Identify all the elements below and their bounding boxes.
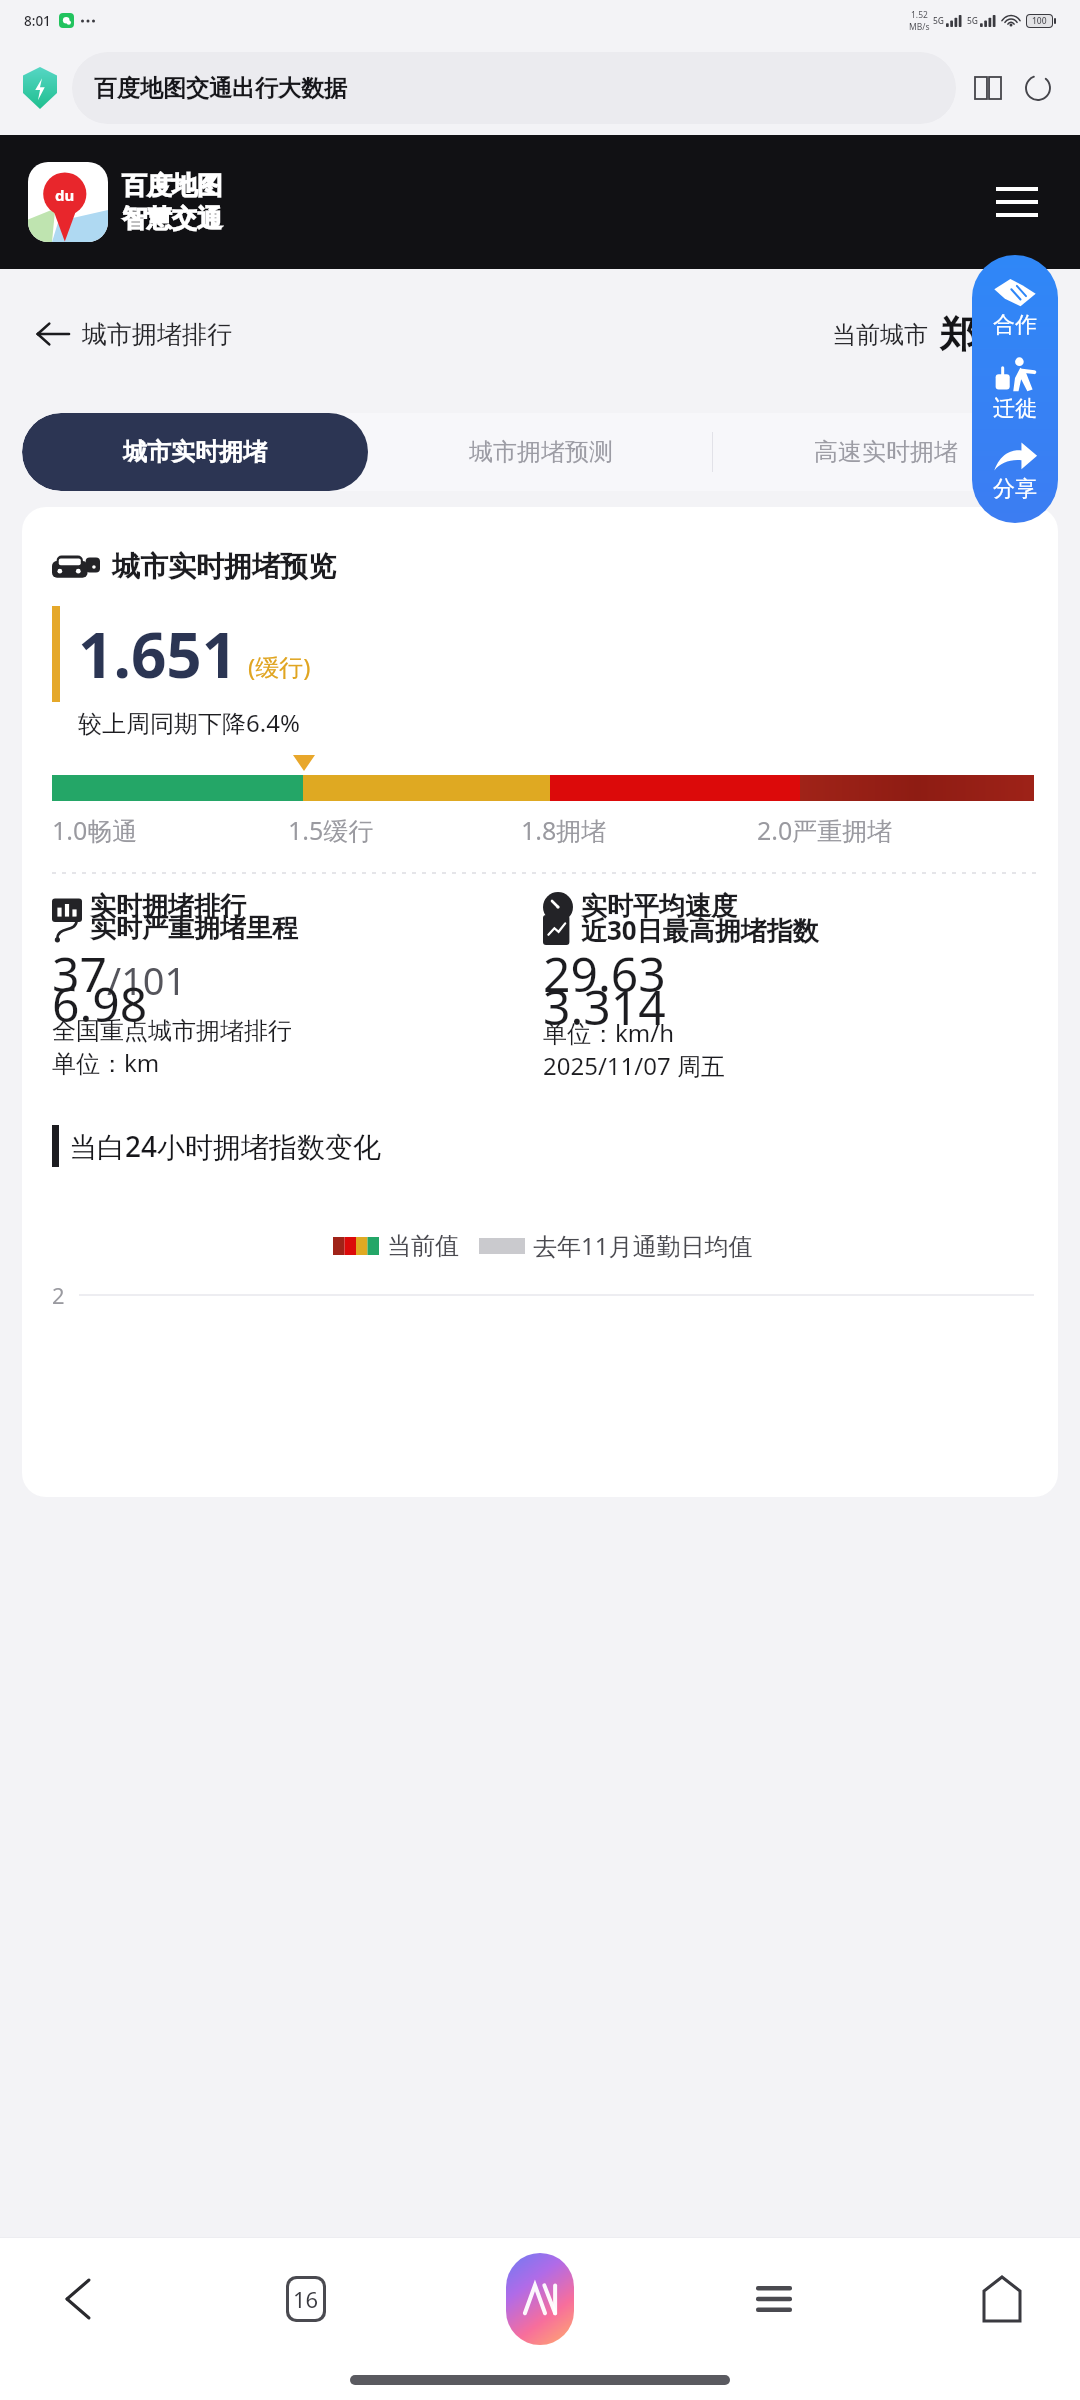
staticText: 城市实时拥堵 [123,437,267,467]
staticText: 合作 [993,311,1037,339]
button[interactable]: 城市拥堵排行 [30,304,232,364]
button[interactable]: 近30日最高拥堵指数 [543,912,1034,1082]
staticText: 当前值 [387,1231,459,1261]
staticText: 实时平均速度 [581,890,737,923]
button[interactable]: 百度地图交通出行大数据 [72,52,956,124]
staticText: 百度地图 [122,170,222,201]
staticText: 全国重点城市拥堵排行 [52,1016,292,1046]
button[interactable]: 实时拥堵排行 [52,890,543,1046]
button[interactable]: 合作 [972,271,1058,343]
button[interactable]: 城市实时拥堵 [22,413,368,491]
staticText: /101 [107,954,187,1006]
button[interactable]: Tabs [266,2259,346,2339]
staticText: 1.651 [78,612,238,696]
button[interactable]: Home [962,2259,1042,2339]
staticText: 1.5缓行 [288,813,521,847]
staticText: 城市拥堵预测 [469,437,613,467]
staticText: 8:01 [24,12,51,30]
staticText: 5G [933,15,945,27]
staticText: 单位：km [52,1046,160,1079]
staticText: 智慧交通 [122,203,222,234]
staticText: (缓行) [248,650,311,683]
staticText: 1.52 [911,9,928,21]
staticText: 1.8拥堵 [521,813,757,847]
staticText: 城市实时拥堵预览 [112,549,336,584]
staticText: 实时拥堵排行 [90,890,246,923]
staticText: 3.314 [543,974,666,1039]
staticText: 100 [1032,15,1047,27]
button[interactable]: Refresh [1016,66,1060,110]
staticText: 百度地图交通出行大数据 [94,74,347,103]
staticText: 5G [967,15,979,27]
staticText: 6.98 [52,971,148,1036]
button[interactable]: 当前城市 [832,303,1050,366]
staticText: MB/s [909,21,930,33]
staticText: 分享 [993,475,1037,503]
staticText: 当前城市 [832,320,928,350]
staticText: du [55,185,75,205]
staticText: 高速实时拥堵 [814,437,958,467]
staticText: 城市拥堵排行 [82,319,232,350]
staticText: 2025/11/07 周五 [543,1049,725,1082]
staticText: 16 [293,2284,319,2314]
staticText: 迁徙 [993,395,1037,423]
button[interactable]: 迁徙 [972,353,1058,427]
staticText: 当白24小时拥堵指数变化 [69,1127,382,1165]
staticText: 郑州 [940,311,1014,358]
button[interactable]: Security [20,65,60,111]
button[interactable]: Reader mode [966,66,1010,110]
staticText: 实时严重拥堵里程 [90,912,298,945]
button[interactable]: 实时严重拥堵里程 [52,912,543,1079]
button[interactable]: 实时平均速度 [543,890,1034,1049]
staticText: 单位：km/h [543,1016,675,1049]
button[interactable]: Back [38,2259,118,2339]
staticText: 较上周同期下降6.4% [78,706,300,739]
staticText: 去年11月通勤日均值 [533,1229,753,1262]
staticText: 1.0畅通 [52,813,288,847]
button[interactable]: Menu [982,167,1052,237]
button[interactable]: 分享 [972,437,1058,507]
staticText: 37 [52,941,107,1006]
staticText: 近30日最高拥堵指数 [581,912,819,948]
staticText: 29.63 [543,941,666,1006]
button[interactable]: 城市拥堵预测 [368,413,713,491]
button[interactable]: 高速实时拥堵 [713,413,1058,491]
button[interactable]: Menu [734,2259,814,2339]
staticText: 2 [52,1280,65,1310]
button[interactable]: AI assistant [494,2253,586,2345]
staticText: 2.0严重拥堵 [757,813,1034,847]
